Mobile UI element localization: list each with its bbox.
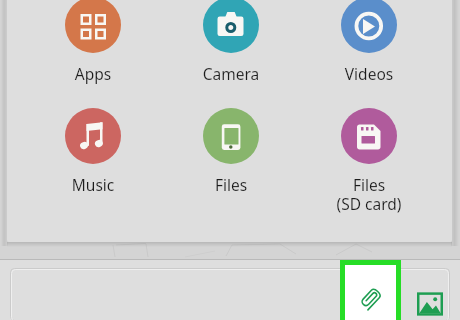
button[interactable]: Apps bbox=[31, 0, 155, 84]
staticText: Camera bbox=[169, 63, 293, 84]
button[interactable]: Attach file bbox=[340, 260, 401, 320]
staticText: Files bbox=[169, 174, 293, 195]
button[interactable]: Videos bbox=[307, 0, 431, 84]
button[interactable]: Music bbox=[31, 108, 155, 195]
button[interactable]: Files (SD card) bbox=[307, 108, 431, 214]
button[interactable]: Files bbox=[169, 108, 293, 195]
staticText: Music bbox=[31, 174, 155, 195]
staticText: Files (SD card) bbox=[307, 174, 431, 214]
staticText: Videos bbox=[307, 63, 431, 84]
staticText: Apps bbox=[31, 63, 155, 84]
button[interactable]: Insert image bbox=[413, 287, 444, 318]
button[interactable]: Camera bbox=[169, 0, 293, 84]
